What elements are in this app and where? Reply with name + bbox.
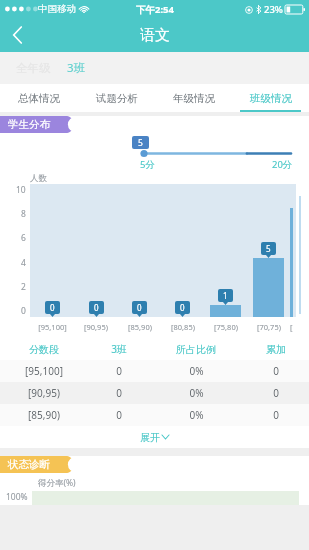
staticText: 10 bbox=[16, 184, 26, 196]
button[interactable]: 年级情况 bbox=[155, 84, 232, 112]
staticText: 得分率(%) bbox=[38, 477, 76, 489]
button[interactable]: Back bbox=[0, 18, 34, 52]
staticText: 累加 bbox=[266, 343, 286, 356]
staticText: [95,100] bbox=[25, 364, 63, 378]
staticText: 试题分析 bbox=[96, 92, 138, 105]
staticText: 0 bbox=[116, 386, 122, 400]
staticText: 6 bbox=[21, 232, 26, 244]
staticText: 5分 bbox=[140, 158, 155, 171]
staticText: 总体情况 bbox=[18, 92, 60, 105]
staticText: [90,95) bbox=[28, 386, 60, 400]
staticText: 8 bbox=[21, 208, 26, 220]
staticText: 3班 bbox=[111, 342, 127, 356]
staticText: 班级情况 bbox=[250, 92, 292, 105]
button[interactable]: 3班 bbox=[59, 54, 94, 82]
staticText: 全年级 bbox=[16, 61, 51, 75]
staticText: 中国移动 bbox=[38, 3, 76, 15]
staticText: 5 bbox=[266, 243, 271, 254]
staticText: 状态诊断 bbox=[8, 458, 50, 471]
staticText: 0% bbox=[189, 364, 204, 378]
staticText: 所占比例 bbox=[176, 343, 216, 356]
staticText: 0 bbox=[50, 302, 55, 313]
button[interactable]: 试题分析 bbox=[78, 84, 155, 112]
staticText: 0 bbox=[116, 364, 122, 378]
staticText: 4 bbox=[21, 257, 26, 269]
staticText: [95,100] bbox=[38, 322, 67, 332]
staticText: [80,85) bbox=[171, 322, 195, 332]
staticText: 人数 bbox=[30, 173, 47, 184]
staticText: 3班 bbox=[67, 60, 86, 76]
staticText: [ bbox=[290, 322, 293, 332]
staticText: 20分 bbox=[272, 158, 293, 171]
staticText: [85,90) bbox=[128, 322, 152, 332]
staticText: 展开 bbox=[140, 431, 160, 444]
staticText: 0 bbox=[273, 386, 279, 400]
staticText: [90,95) bbox=[84, 322, 108, 332]
staticText: 0 bbox=[21, 305, 26, 317]
staticText: 0 bbox=[180, 302, 185, 313]
staticText: 0 bbox=[273, 408, 279, 422]
staticText: 100% bbox=[6, 491, 28, 503]
button[interactable]: 展开 bbox=[0, 426, 309, 448]
staticText: 0 bbox=[116, 408, 122, 422]
staticText: 0 bbox=[273, 364, 279, 378]
staticText: [70,75) bbox=[257, 322, 281, 332]
staticText: 0% bbox=[189, 386, 204, 400]
staticText: 2 bbox=[21, 281, 26, 293]
staticText: [75,80) bbox=[214, 322, 238, 332]
staticText: 0% bbox=[189, 408, 204, 422]
button[interactable]: 班级情况 bbox=[232, 84, 309, 112]
staticText: 0 bbox=[137, 302, 142, 313]
staticText: 0 bbox=[94, 302, 99, 313]
staticText: 5 bbox=[138, 137, 143, 148]
staticText: [85,90) bbox=[28, 408, 60, 422]
staticText: 学生分布 bbox=[8, 118, 50, 131]
staticText: 1 bbox=[223, 290, 228, 301]
staticText: 年级情况 bbox=[173, 92, 215, 105]
button[interactable]: 总体情况 bbox=[0, 84, 78, 112]
staticText: 分数段 bbox=[29, 343, 59, 356]
staticText: 下午2:54 bbox=[136, 3, 174, 16]
staticText: 语文 bbox=[140, 26, 170, 45]
staticText: 23% bbox=[264, 3, 283, 16]
